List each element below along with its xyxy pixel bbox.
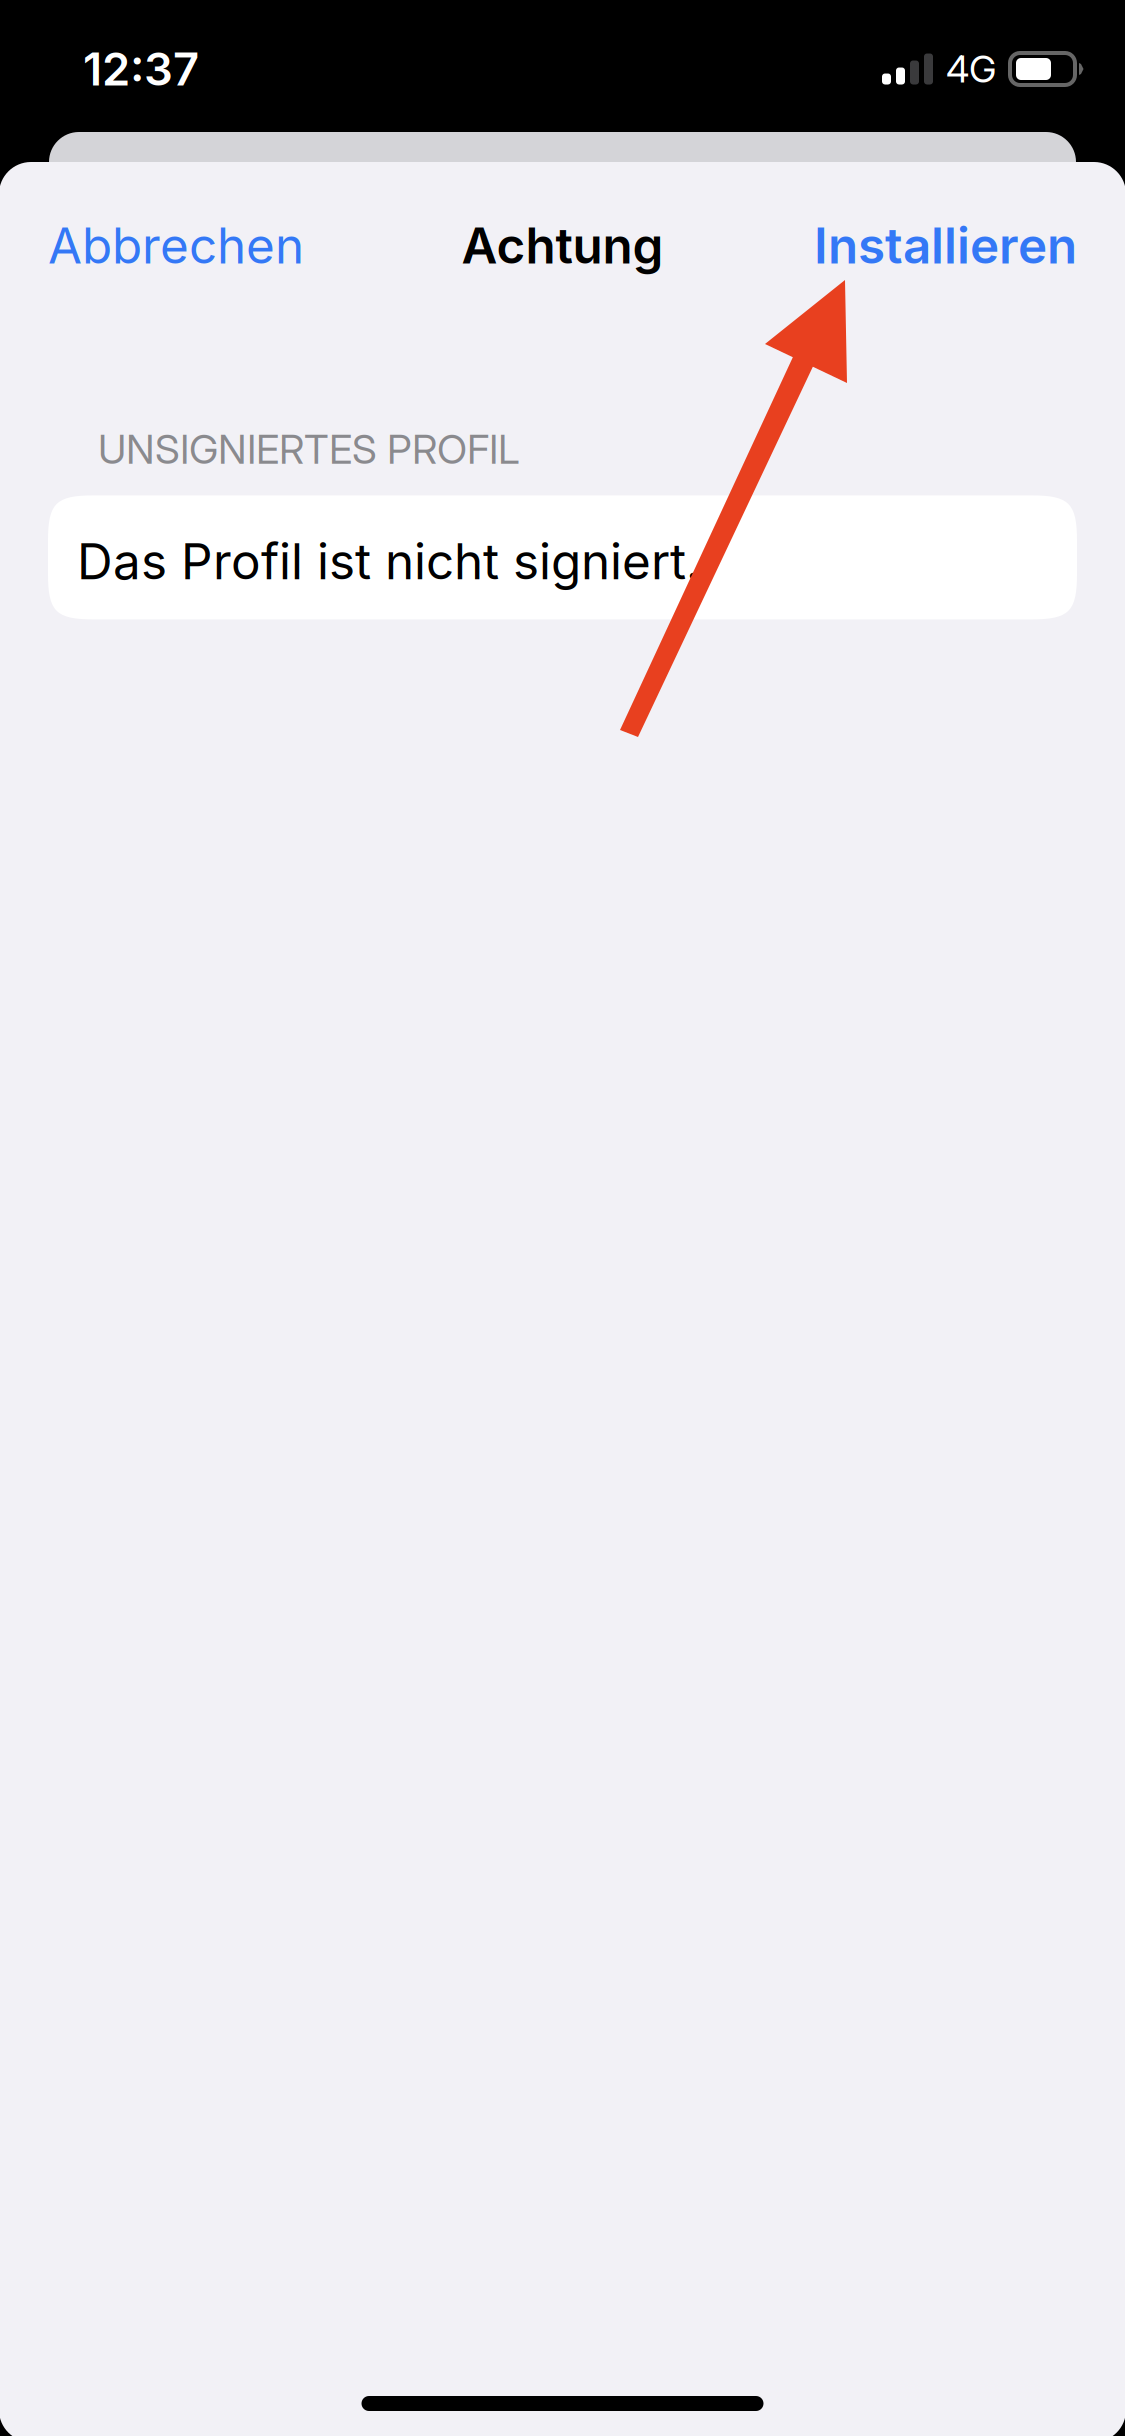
staticText: Installieren [814, 216, 1077, 275]
navigationBar: Achtung [0, 162, 1125, 329]
button[interactable]: Abbrechen [48, 186, 334, 305]
staticText: UNSIGNIERTES PROFIL [98, 425, 520, 473]
staticText: 12:37 [83, 42, 199, 96]
staticText: Abbrechen [48, 216, 304, 275]
staticText: Das Profil ist nicht signiert. [77, 532, 700, 591]
staticText: Achtung [461, 216, 663, 275]
button[interactable]: Installieren [784, 186, 1077, 305]
staticText: 4G [946, 46, 996, 92]
button[interactable]: Das Profil ist nicht signiert. [0, 495, 1125, 619]
